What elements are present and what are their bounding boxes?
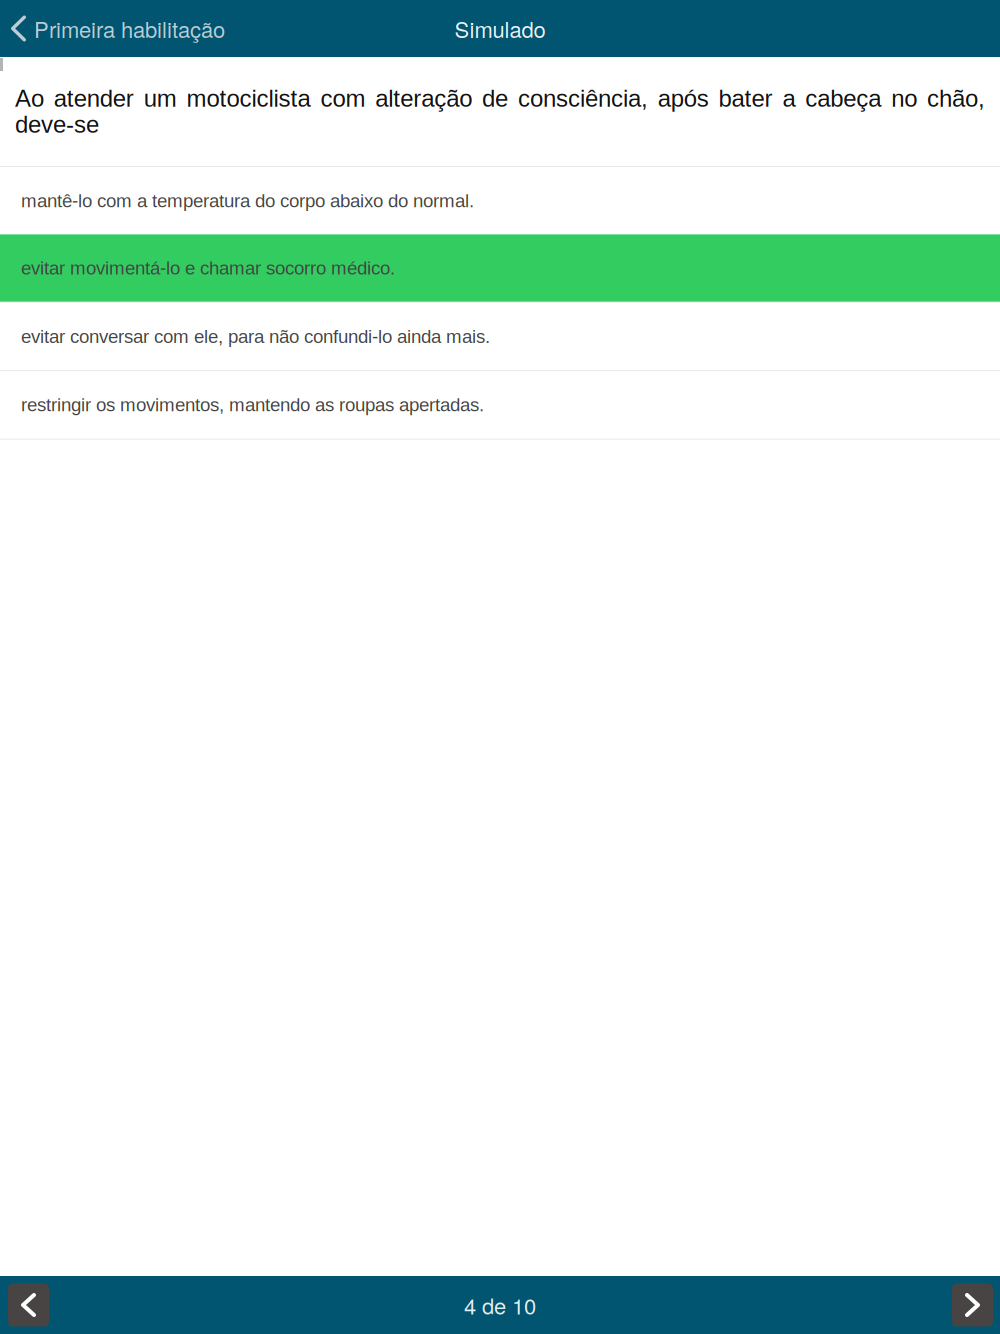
- staticText: após: [658, 85, 709, 112]
- staticText: chão,: [927, 85, 985, 112]
- button[interactable]: Próxima questão: [952, 1283, 993, 1326]
- staticText: a: [782, 85, 795, 112]
- button[interactable]: evitar conversar com ele, para não confu…: [0, 303, 1000, 370]
- button[interactable]: Primeira habilitação: [0, 0, 235, 57]
- button[interactable]: mantê-lo com a temperatura do corpo abai…: [0, 167, 1000, 234]
- staticText: atender: [54, 85, 134, 112]
- staticText: no: [891, 85, 917, 112]
- staticText: restringir os movimentos, mantendo as ro…: [21, 394, 484, 415]
- staticText: alteração: [375, 85, 472, 112]
- staticText: cabeça: [805, 85, 881, 112]
- staticText: um: [144, 85, 177, 112]
- staticText: evitar movimentá-lo e chamar socorro méd…: [21, 258, 395, 279]
- staticText: 4 de 10: [464, 1289, 536, 1321]
- staticText: motociclista: [186, 85, 310, 112]
- staticText: evitar conversar com ele, para não confu…: [21, 326, 490, 347]
- staticText: mantê-lo com a temperatura do corpo abai…: [21, 190, 474, 211]
- staticText: Ao: [15, 85, 44, 112]
- staticText: Primeira habilitação: [34, 13, 225, 44]
- staticText: de: [482, 85, 508, 112]
- staticText: deve-se: [15, 111, 99, 138]
- staticText: com: [320, 85, 365, 112]
- staticText: consciência,: [518, 85, 648, 112]
- button[interactable]: evitar movimentá-lo e chamar socorro méd…: [0, 234, 1000, 302]
- button[interactable]: restringir os movimentos, mantendo as ro…: [0, 371, 1000, 439]
- staticText: Simulado: [454, 13, 545, 44]
- button[interactable]: Questão anterior: [8, 1283, 49, 1326]
- staticText: bater: [719, 85, 773, 112]
